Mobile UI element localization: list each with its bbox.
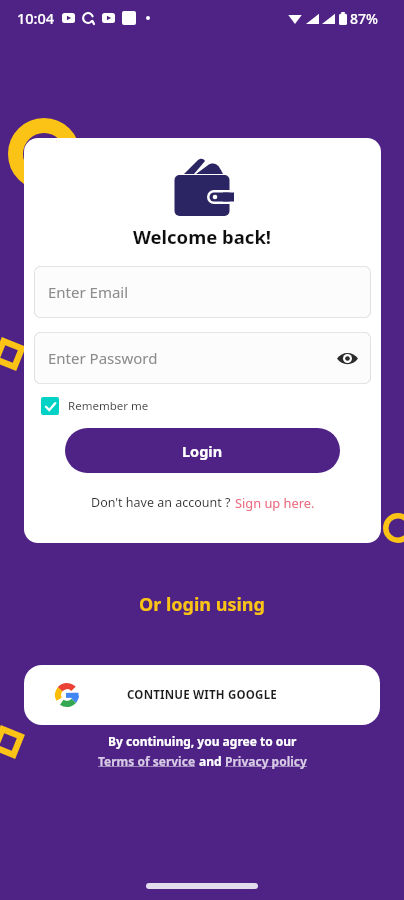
- button[interactable]: CONTINUE WITH GOOGLE: [24, 665, 380, 725]
- staticText: Login: [182, 441, 223, 461]
- staticText: Enter Email: [48, 282, 129, 302]
- staticText: CONTINUE WITH GOOGLE: [127, 687, 277, 703]
- button[interactable]: Terms of service: [98, 753, 196, 769]
- button[interactable]: Sign up here.: [235, 494, 315, 511]
- staticText: 87%: [350, 9, 378, 28]
- staticText: Remember me: [68, 398, 149, 414]
- staticText: Or login using: [139, 592, 265, 617]
- button[interactable]: Remember me: [41, 397, 149, 415]
- staticText: By continuing, you agree to our: [108, 733, 297, 749]
- staticText: Don't have an account ?: [91, 494, 231, 511]
- button[interactable]: Enter Password: [34, 332, 371, 384]
- button[interactable]: Show password: [337, 351, 358, 366]
- button[interactable]: Privacy policy: [225, 753, 307, 769]
- staticText: Enter Password: [48, 348, 158, 368]
- button[interactable]: Enter Email: [34, 266, 371, 318]
- button[interactable]: Login: [65, 428, 340, 473]
- staticText: Welcome back!: [133, 224, 272, 249]
- staticText: 10:04: [17, 8, 55, 28]
- staticText: and: [196, 753, 225, 769]
